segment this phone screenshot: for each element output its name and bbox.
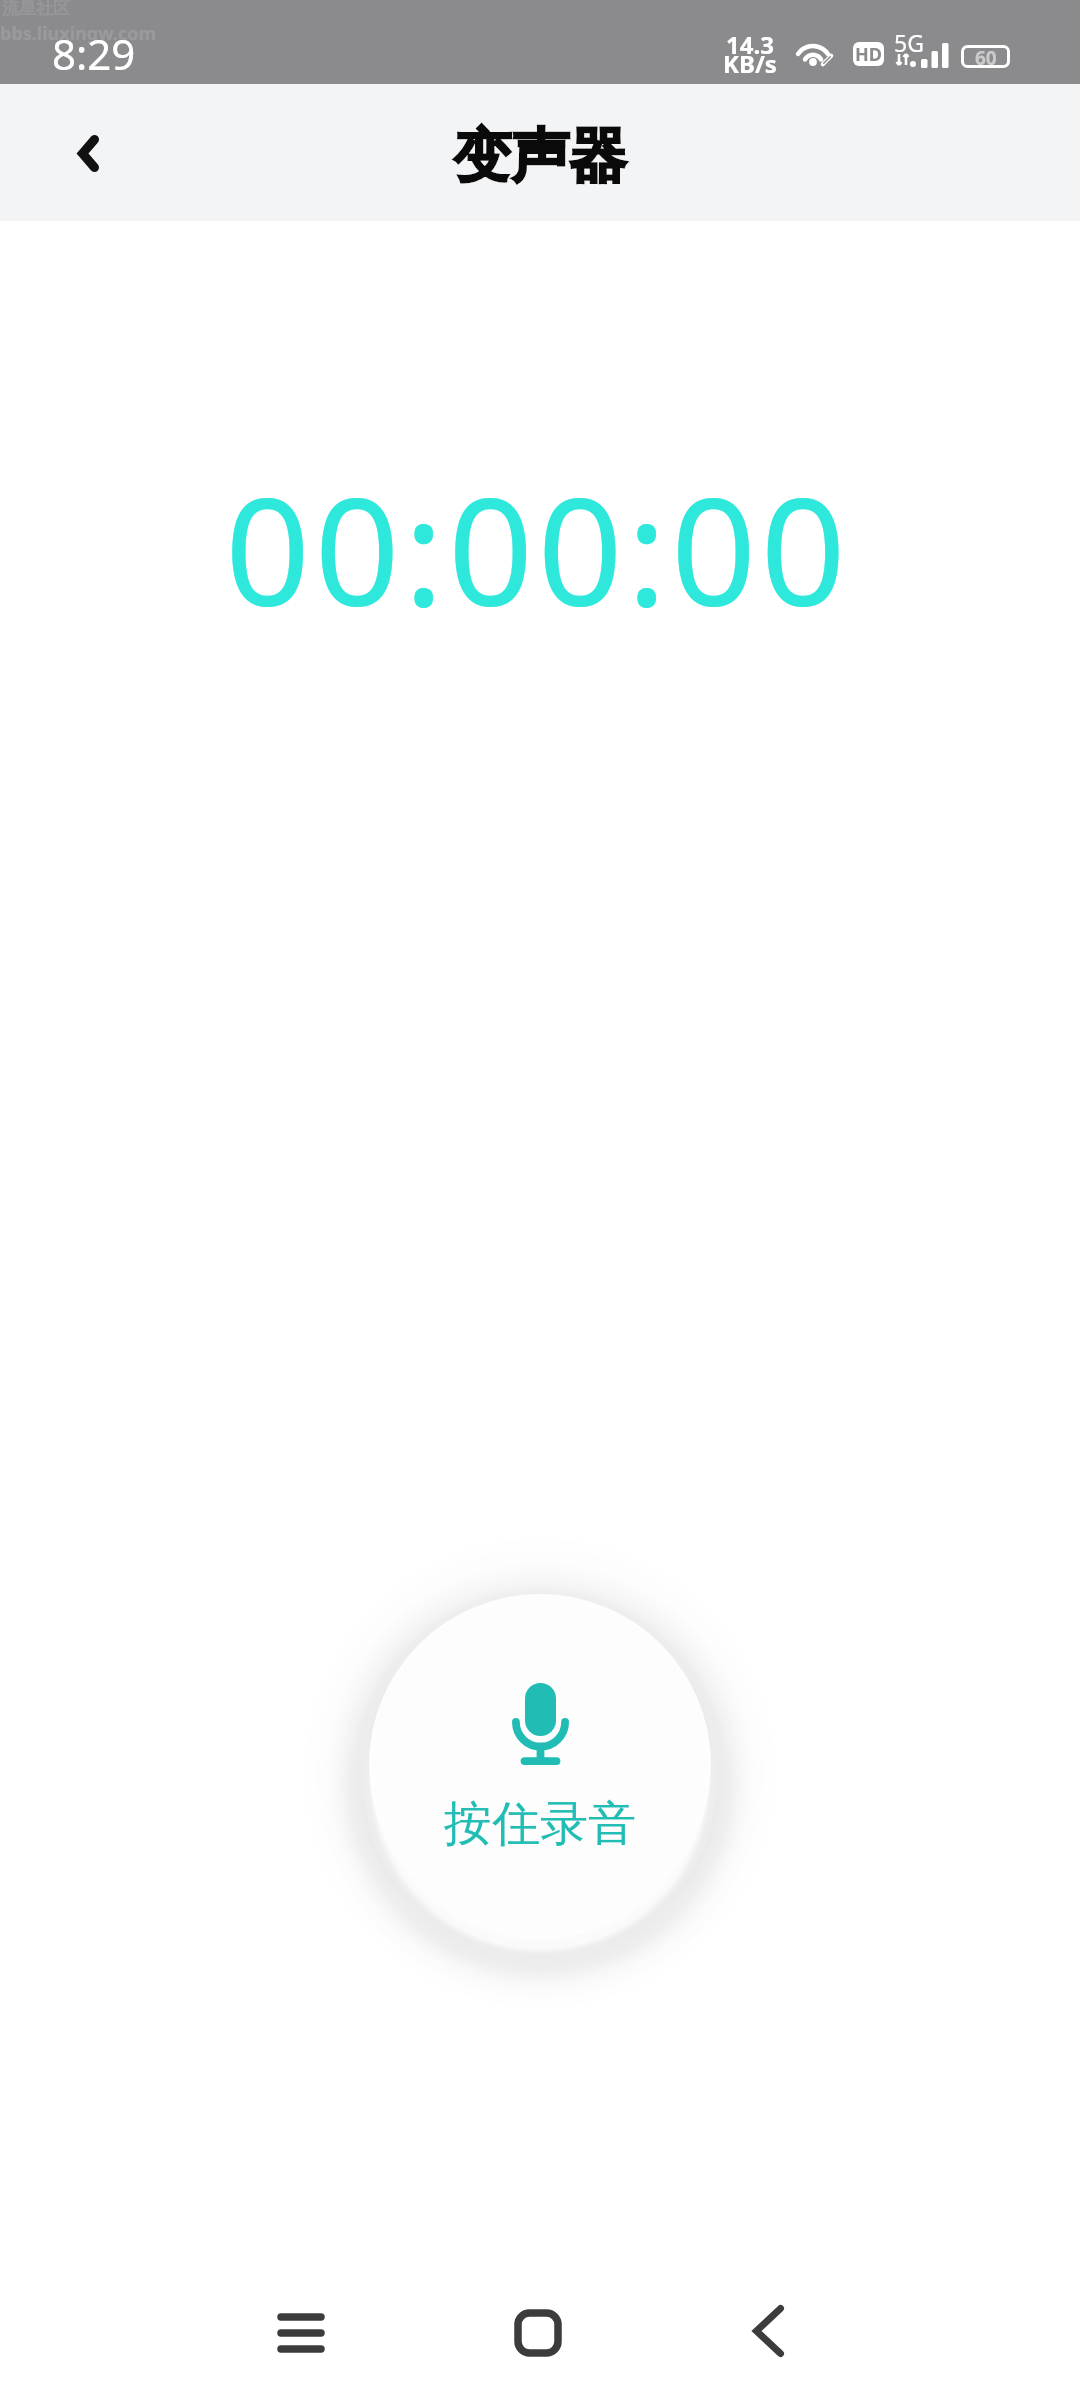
staticText: 14.3 — [726, 28, 774, 61]
staticText: 60 — [975, 45, 997, 68]
button[interactable]: Home — [478, 2273, 598, 2393]
staticText: KB/s — [723, 47, 777, 80]
button[interactable]: Back — [708, 2271, 828, 2391]
staticText: 5G — [894, 27, 924, 58]
staticText: bbs.liuxingw.com — [0, 21, 156, 46]
button[interactable]: Back — [26, 91, 150, 215]
staticText: 变声器 — [453, 120, 627, 193]
staticText: 8:29 — [52, 25, 136, 82]
button[interactable]: 按住录音 — [369, 1594, 711, 1936]
button[interactable]: Recents — [241, 2273, 361, 2393]
staticText: 流星社区 — [2, 0, 70, 19]
staticText: 00:00:00 — [225, 447, 850, 650]
staticText: HD — [855, 42, 882, 66]
staticText: 按住录音 — [444, 1794, 636, 1854]
